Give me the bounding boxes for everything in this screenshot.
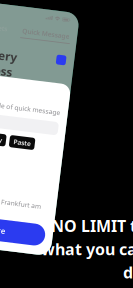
staticText: Paste: [30, 157, 90, 187]
staticText: Enter the title of quick message: [0, 39, 133, 69]
button[interactable]: Paste: [16, 151, 104, 193]
staticText: NO LIMIT to: [51, 215, 133, 236]
staticText: what you can: [41, 238, 133, 260]
staticText: Put in the delivery address? Would you: [0, 0, 67, 36]
staticText: do.: [123, 262, 133, 283]
staticText: like to do at the delivery?: [0, 39, 125, 71]
